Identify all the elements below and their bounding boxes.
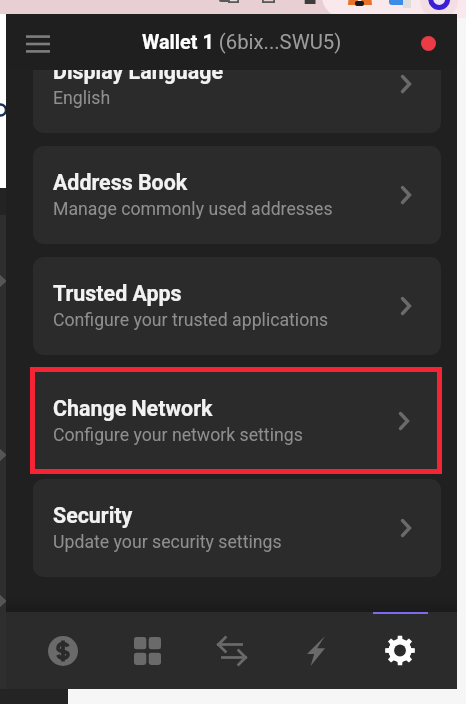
- button[interactable]: Wallet: [20, 612, 105, 689]
- button[interactable]: Address Book: [33, 146, 441, 244]
- button[interactable]: Swap: [190, 612, 274, 689]
- staticText: Wallet 1 (6bix...SWU5): [142, 30, 342, 54]
- button[interactable]: Trusted Apps: [33, 257, 441, 355]
- button[interactable]: Menu: [21, 27, 55, 61]
- staticText: Update your security settings: [53, 532, 282, 553]
- staticText: Manage commonly used addresses: [53, 199, 333, 220]
- button[interactable]: Activity: [274, 612, 358, 689]
- button[interactable]: Change Network: [35, 372, 437, 469]
- button[interactable]: Security: [33, 479, 441, 577]
- staticText: English: [53, 88, 111, 109]
- button[interactable]: Display Language: [33, 35, 441, 133]
- staticText: Configure your trusted applications: [53, 310, 329, 331]
- staticText: Change Network: [53, 396, 213, 421]
- staticText: Security: [53, 503, 133, 528]
- staticText: Display Language: [53, 59, 224, 84]
- staticText: Trusted Apps: [53, 281, 182, 306]
- button[interactable]: Connection status: [421, 36, 436, 51]
- staticText: Address Book: [53, 170, 188, 195]
- button[interactable]: Settings: [358, 612, 442, 689]
- staticText: Configure your network settings: [53, 425, 303, 446]
- button[interactable]: Apps: [105, 612, 190, 689]
